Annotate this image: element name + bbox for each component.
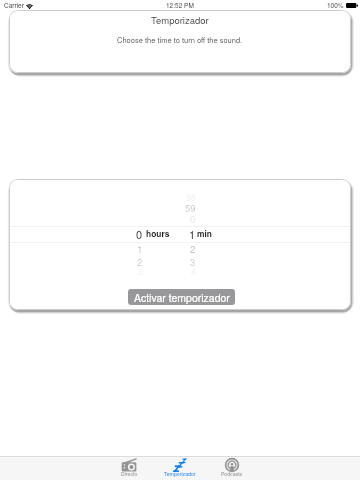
staticText: Temporizador [151, 13, 209, 27]
staticText: 12:52 PM [166, 1, 194, 10]
button[interactable]: Temporizador [156, 457, 204, 480]
staticText: 59 [185, 201, 196, 214]
staticText: 3 [138, 265, 143, 277]
staticText: 1 [189, 226, 196, 242]
staticText: 0 [136, 226, 143, 242]
staticText: 0 [190, 212, 196, 226]
staticText: Directo [121, 470, 138, 477]
staticText: Activar temporizador [134, 290, 230, 305]
staticText: Temporizador [164, 470, 196, 477]
button[interactable]: Directo [105, 457, 153, 480]
staticText: 1 [137, 242, 143, 256]
staticText: Choose the time to turn off the sound. [117, 34, 243, 45]
staticText: 4 [191, 265, 196, 277]
staticText: Carrier [4, 1, 24, 10]
staticText: 3 [190, 255, 196, 268]
staticText: 2 [190, 242, 196, 256]
staticText: hours [146, 228, 170, 240]
button[interactable]: Podcasts [208, 457, 256, 480]
staticText: 2 [137, 255, 143, 268]
button[interactable]: Activar temporizador [128, 289, 235, 305]
staticText: 100% [327, 1, 344, 10]
staticText: min [197, 228, 212, 240]
staticText: Podcasts [221, 470, 243, 477]
staticText: 58 [186, 191, 196, 203]
